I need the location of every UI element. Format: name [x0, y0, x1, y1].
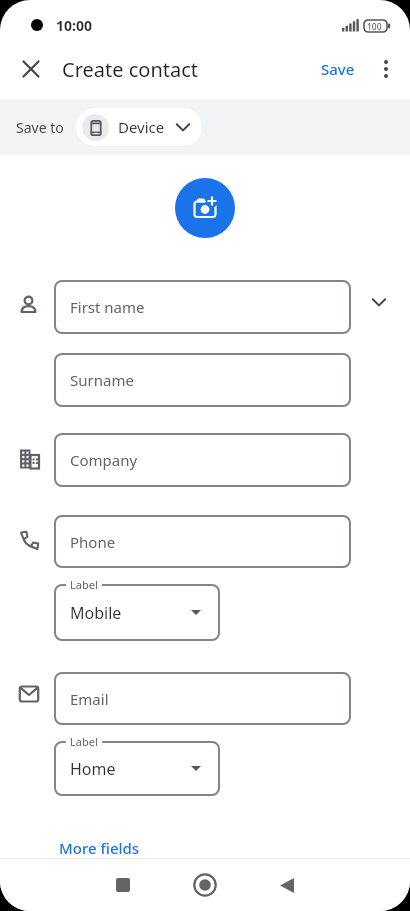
staticText: Company — [70, 450, 138, 470]
button[interactable]: Surname — [54, 353, 351, 407]
button[interactable] — [372, 55, 400, 83]
button[interactable] — [14, 52, 48, 86]
staticText: Device — [118, 117, 165, 137]
button[interactable]: More fields — [59, 838, 140, 858]
staticText: Label — [70, 734, 98, 749]
button[interactable]: Mobile — [54, 584, 220, 641]
button[interactable] — [190, 870, 220, 900]
button[interactable]: Device — [76, 108, 202, 146]
staticText: More fields — [59, 838, 140, 858]
button[interactable]: Company — [54, 433, 351, 487]
button[interactable]: Save — [321, 59, 355, 79]
button[interactable] — [272, 870, 302, 900]
staticText: Surname — [70, 370, 134, 390]
button[interactable]: First name — [54, 280, 351, 334]
button[interactable] — [175, 178, 235, 238]
staticText: Email — [70, 689, 109, 709]
staticText: Save to — [16, 118, 64, 137]
button[interactable] — [108, 870, 138, 900]
staticText: Save — [321, 59, 355, 79]
staticText: Home — [70, 758, 116, 780]
staticText: Phone — [70, 532, 116, 552]
staticText: First name — [70, 297, 145, 317]
button[interactable]: Home — [54, 741, 220, 796]
staticText: Label — [70, 577, 98, 592]
staticText: Mobile — [70, 602, 122, 624]
staticText: Create contact — [62, 56, 199, 83]
button[interactable]: Phone — [54, 515, 351, 568]
staticText: 100 — [367, 21, 382, 33]
staticText: 10:00 — [56, 16, 92, 35]
button[interactable]: Email — [54, 672, 351, 725]
